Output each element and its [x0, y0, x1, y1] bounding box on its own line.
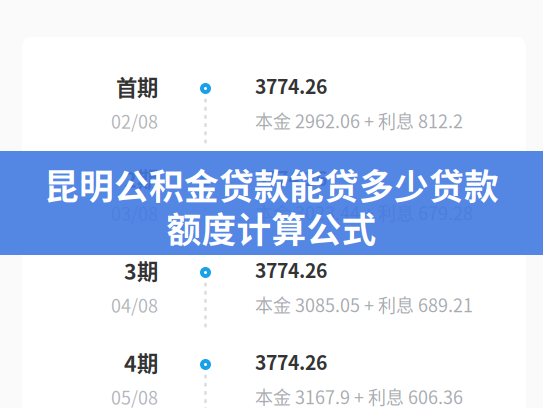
button[interactable]: 3期: [0, 255, 158, 318]
staticText: 昆明公积金贷款能贷多少贷款: [44, 159, 499, 209]
button[interactable]: 首期: [0, 71, 158, 134]
staticText: 本金 3167.9 + 利息 606.36: [255, 383, 463, 408]
staticText: 03/08: [111, 200, 158, 226]
staticText: 04/08: [111, 292, 158, 318]
staticText: 本金 3023.44 + 利息 679.28: [255, 199, 473, 226]
staticText: 05/08: [111, 384, 158, 408]
button[interactable]: 3774.26: [255, 163, 543, 226]
button[interactable]: 3774.26: [255, 255, 543, 318]
button[interactable]: 2期: [0, 163, 158, 226]
staticText: 3期: [124, 255, 158, 286]
staticText: 3774.26: [255, 71, 327, 99]
button[interactable]: 4期: [0, 347, 158, 408]
button[interactable]: 3774.26: [255, 347, 543, 408]
staticText: 3774.26: [255, 347, 327, 375]
staticText: 4期: [124, 347, 158, 378]
staticText: 首期: [116, 71, 158, 102]
staticText: 3774.26: [255, 255, 327, 283]
staticText: 3774.26: [255, 163, 327, 191]
staticText: 额度计算公式: [166, 202, 376, 253]
staticText: 02/08: [111, 108, 158, 134]
staticText: 2期: [124, 163, 158, 194]
staticText: 本金 3085.05 + 利息 689.21: [255, 291, 473, 318]
staticText: 本金 2962.06 + 利息 812.2: [255, 107, 463, 134]
button[interactable]: 3774.26: [255, 71, 543, 134]
